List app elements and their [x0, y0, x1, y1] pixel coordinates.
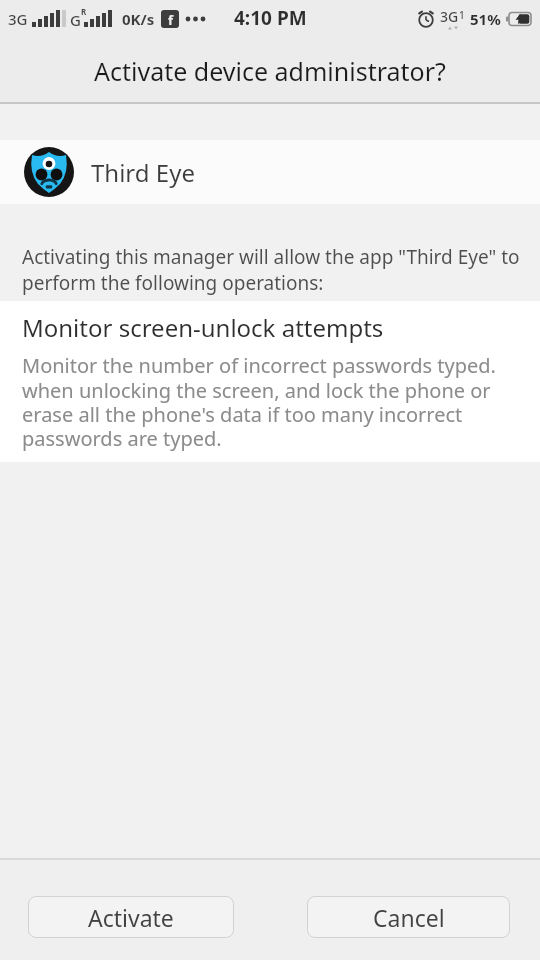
staticText: R	[81, 6, 87, 17]
button[interactable]: Activate	[28, 896, 234, 938]
staticText: Activate	[88, 902, 174, 933]
staticText: 3G	[440, 7, 459, 26]
staticText: 51%	[470, 9, 501, 29]
staticText: Monitor the number of incorrect password…	[22, 352, 496, 452]
button[interactable]: Third Eye	[0, 140, 540, 204]
staticText: f	[168, 11, 174, 29]
staticText: Activating this manager will allow the a…	[22, 244, 520, 295]
staticText: Third Eye	[91, 156, 195, 189]
staticText: 0K/s	[122, 9, 155, 29]
staticText: 3G	[8, 9, 28, 29]
staticText: 1	[459, 8, 465, 22]
staticText: Monitor screen-unlock attempts	[22, 311, 384, 344]
staticText: G	[70, 10, 81, 30]
staticText: 4:10 PM	[234, 5, 307, 31]
button[interactable]: Cancel	[307, 896, 510, 938]
staticText: Cancel	[373, 902, 445, 933]
staticText: Activate device administrator?	[94, 54, 446, 88]
